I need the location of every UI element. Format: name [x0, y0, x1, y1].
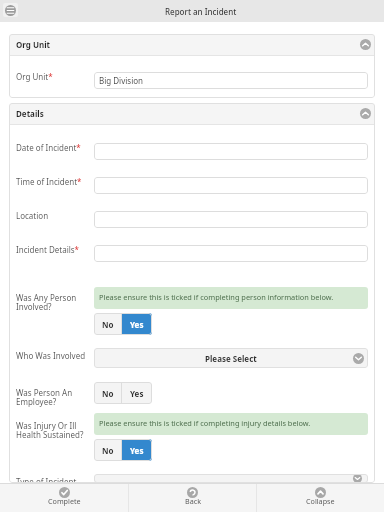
staticText: Collapse — [306, 496, 335, 506]
button[interactable]: Back — [129, 484, 256, 512]
staticText: Yes — [130, 445, 144, 456]
staticText: Was Injury Or Ill Health Sustained? — [16, 420, 84, 440]
staticText: Please ensure this is ticked if completi… — [99, 292, 334, 302]
button[interactable]: Complete — [0, 484, 128, 512]
other: Open list — [353, 474, 364, 483]
other: Collapse section — [360, 108, 371, 119]
button[interactable]: Collapse — [257, 484, 384, 512]
staticText: Please Select — [205, 353, 257, 364]
staticText: Complete — [48, 496, 81, 506]
button[interactable]: No — [94, 382, 121, 404]
staticText: Back — [185, 496, 201, 506]
staticText: Location — [16, 210, 49, 221]
button[interactable]: Org Unit — [9, 34, 375, 55]
button[interactable]: Yes — [122, 382, 152, 404]
staticText: Type of Incident — [16, 476, 77, 483]
button[interactable]: Menu — [3, 3, 18, 17]
staticText: Org Unit — [16, 39, 51, 50]
button[interactable]: Please Select — [94, 348, 368, 368]
staticText: Big Division — [99, 75, 143, 86]
button[interactable]: Open list — [94, 474, 368, 483]
staticText: Was Any Person Involved? — [16, 292, 77, 312]
other: Complete — [59, 487, 70, 498]
other: Collapse section — [360, 39, 371, 50]
button[interactable]: No — [94, 439, 121, 461]
button[interactable] — [94, 143, 368, 160]
other: Open list — [353, 353, 364, 364]
button[interactable] — [94, 245, 368, 262]
staticText: Who Was Involved — [16, 350, 86, 361]
button[interactable]: Yes — [122, 313, 152, 335]
staticText: Was Person An Employee? — [16, 387, 73, 407]
other: Collapse — [315, 487, 326, 498]
staticText: Incident Details* — [16, 244, 79, 255]
staticText: Time of Incident* — [16, 176, 82, 187]
staticText: Date of Incident* — [16, 142, 81, 153]
staticText: Yes — [130, 388, 144, 399]
button[interactable]: Big Division — [94, 72, 368, 89]
staticText: Please ensure this is ticked if completi… — [99, 418, 311, 428]
staticText: No — [102, 388, 114, 399]
staticText: No — [102, 445, 114, 456]
button[interactable]: Details — [9, 103, 375, 124]
button[interactable] — [94, 177, 368, 194]
button[interactable]: Yes — [122, 439, 152, 461]
staticText: Org Unit* — [16, 71, 53, 82]
staticText: Details — [16, 108, 44, 119]
staticText: No — [102, 319, 114, 330]
button[interactable]: No — [94, 313, 121, 335]
other: Back — [187, 487, 198, 498]
button[interactable] — [94, 211, 368, 228]
staticText: Yes — [130, 319, 144, 330]
staticText: Report an Incident — [165, 6, 237, 17]
